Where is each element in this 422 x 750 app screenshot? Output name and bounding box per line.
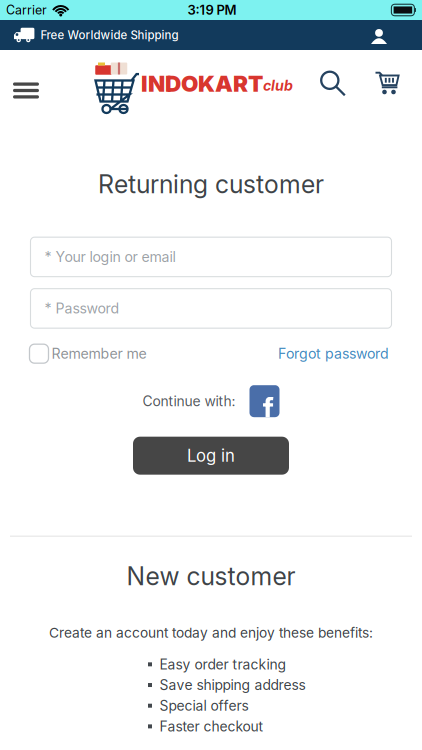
- button[interactable]: * Password: [30, 289, 391, 328]
- staticText: 3:19 PM: [187, 2, 236, 18]
- staticText: Faster checkout: [159, 718, 263, 735]
- button[interactable]: Menu: [0, 67, 39, 100]
- button[interactable]: Account: [351, 20, 422, 50]
- staticText: New customer: [126, 561, 295, 591]
- staticText: Save shipping address: [159, 677, 305, 693]
- staticText: Special offers: [159, 697, 248, 714]
- staticText: Log in: [187, 446, 235, 466]
- button[interactable]: IndoKart club home: [39, 59, 293, 107]
- staticText: INDOKART: [141, 70, 263, 97]
- staticText: Easy order tracking: [159, 656, 286, 673]
- button[interactable]: Continue with Facebook: [249, 385, 279, 417]
- staticText: f: [262, 391, 273, 426]
- button[interactable]: Cart: [346, 63, 422, 103]
- button[interactable]: Search: [320, 62, 346, 104]
- staticText: club: [263, 77, 293, 94]
- button[interactable]: Forgot password: [278, 345, 389, 362]
- staticText: Forgot password: [278, 345, 389, 362]
- staticText: Returning customer: [98, 169, 324, 199]
- staticText: * Your login or email: [44, 248, 175, 265]
- staticText: Free Worldwide Shipping: [40, 28, 178, 42]
- staticText: * Password: [44, 300, 119, 317]
- staticText: Create an account today and enjoy these …: [49, 624, 373, 641]
- button[interactable]: Remember me: [29, 344, 146, 363]
- staticText: Remember me: [51, 345, 146, 362]
- staticText: Continue with:: [142, 393, 235, 410]
- staticText: Carrier: [6, 2, 47, 17]
- button[interactable]: Log in: [133, 437, 289, 475]
- button[interactable]: * Your login or email: [30, 237, 391, 277]
